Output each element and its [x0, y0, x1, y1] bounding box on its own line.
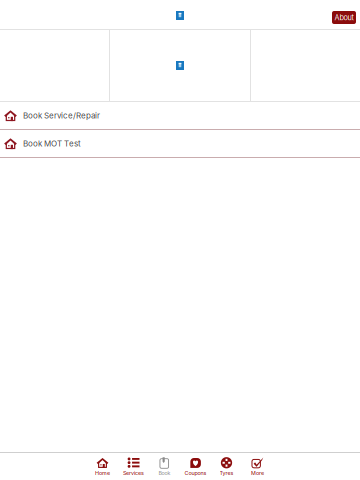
staticText: Services [123, 470, 144, 476]
button[interactable]: Book MOT Test [0, 130, 360, 157]
button[interactable]: Tyres [211, 453, 242, 479]
staticText: Home [95, 470, 110, 476]
staticText: Book [158, 470, 170, 476]
staticText: Coupons [184, 470, 206, 476]
button[interactable]: Services [118, 453, 149, 479]
button[interactable]: Coupons [180, 453, 211, 479]
staticText: About [334, 13, 353, 22]
button[interactable]: Book [149, 453, 180, 479]
button[interactable]: About [332, 11, 356, 24]
button[interactable]: Home [87, 453, 118, 479]
staticText: More [251, 470, 264, 476]
button[interactable]: More [242, 453, 273, 479]
staticText: Book Service/Repair [23, 111, 100, 120]
staticText: Book MOT Test [23, 139, 81, 148]
staticText: Tyres [219, 470, 233, 476]
button[interactable]: Book Service/Repair [0, 102, 360, 129]
